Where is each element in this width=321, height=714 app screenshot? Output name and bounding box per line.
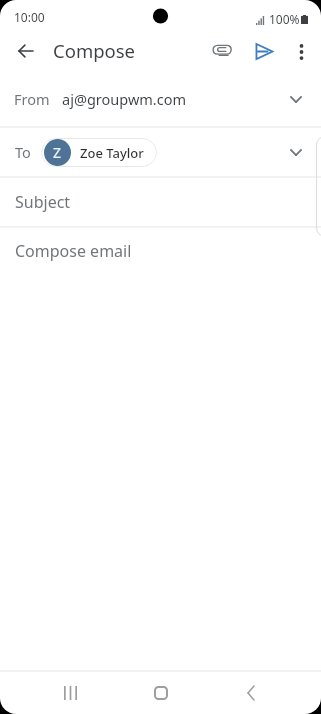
button[interactable]: Send — [241, 31, 281, 71]
staticText: 100% — [269, 11, 300, 27]
staticText: Compose — [53, 38, 136, 63]
button[interactable]: Recent apps — [40, 672, 100, 714]
button[interactable]: More options — [281, 32, 319, 70]
button[interactable]: Back — [6, 32, 44, 70]
staticText: aj@groupwm.com — [62, 89, 187, 109]
staticText: Compose email — [15, 240, 132, 262]
staticText: 10:00 — [14, 9, 45, 25]
button[interactable]: From — [0, 72, 321, 126]
button[interactable]: Z — [41, 138, 157, 167]
button[interactable]: Attach file — [203, 32, 241, 70]
staticText: Subject — [15, 191, 71, 213]
button[interactable]: Back — [221, 672, 281, 714]
button[interactable]: Home — [131, 672, 191, 714]
staticText: From — [14, 89, 50, 109]
button[interactable]: Compose email — [0, 228, 321, 278]
button[interactable]: Subject — [0, 178, 321, 226]
staticText: Z — [53, 143, 62, 162]
button[interactable]: To — [0, 128, 321, 176]
staticText: To — [15, 142, 31, 162]
staticText: Zoe Taylor — [80, 144, 144, 162]
